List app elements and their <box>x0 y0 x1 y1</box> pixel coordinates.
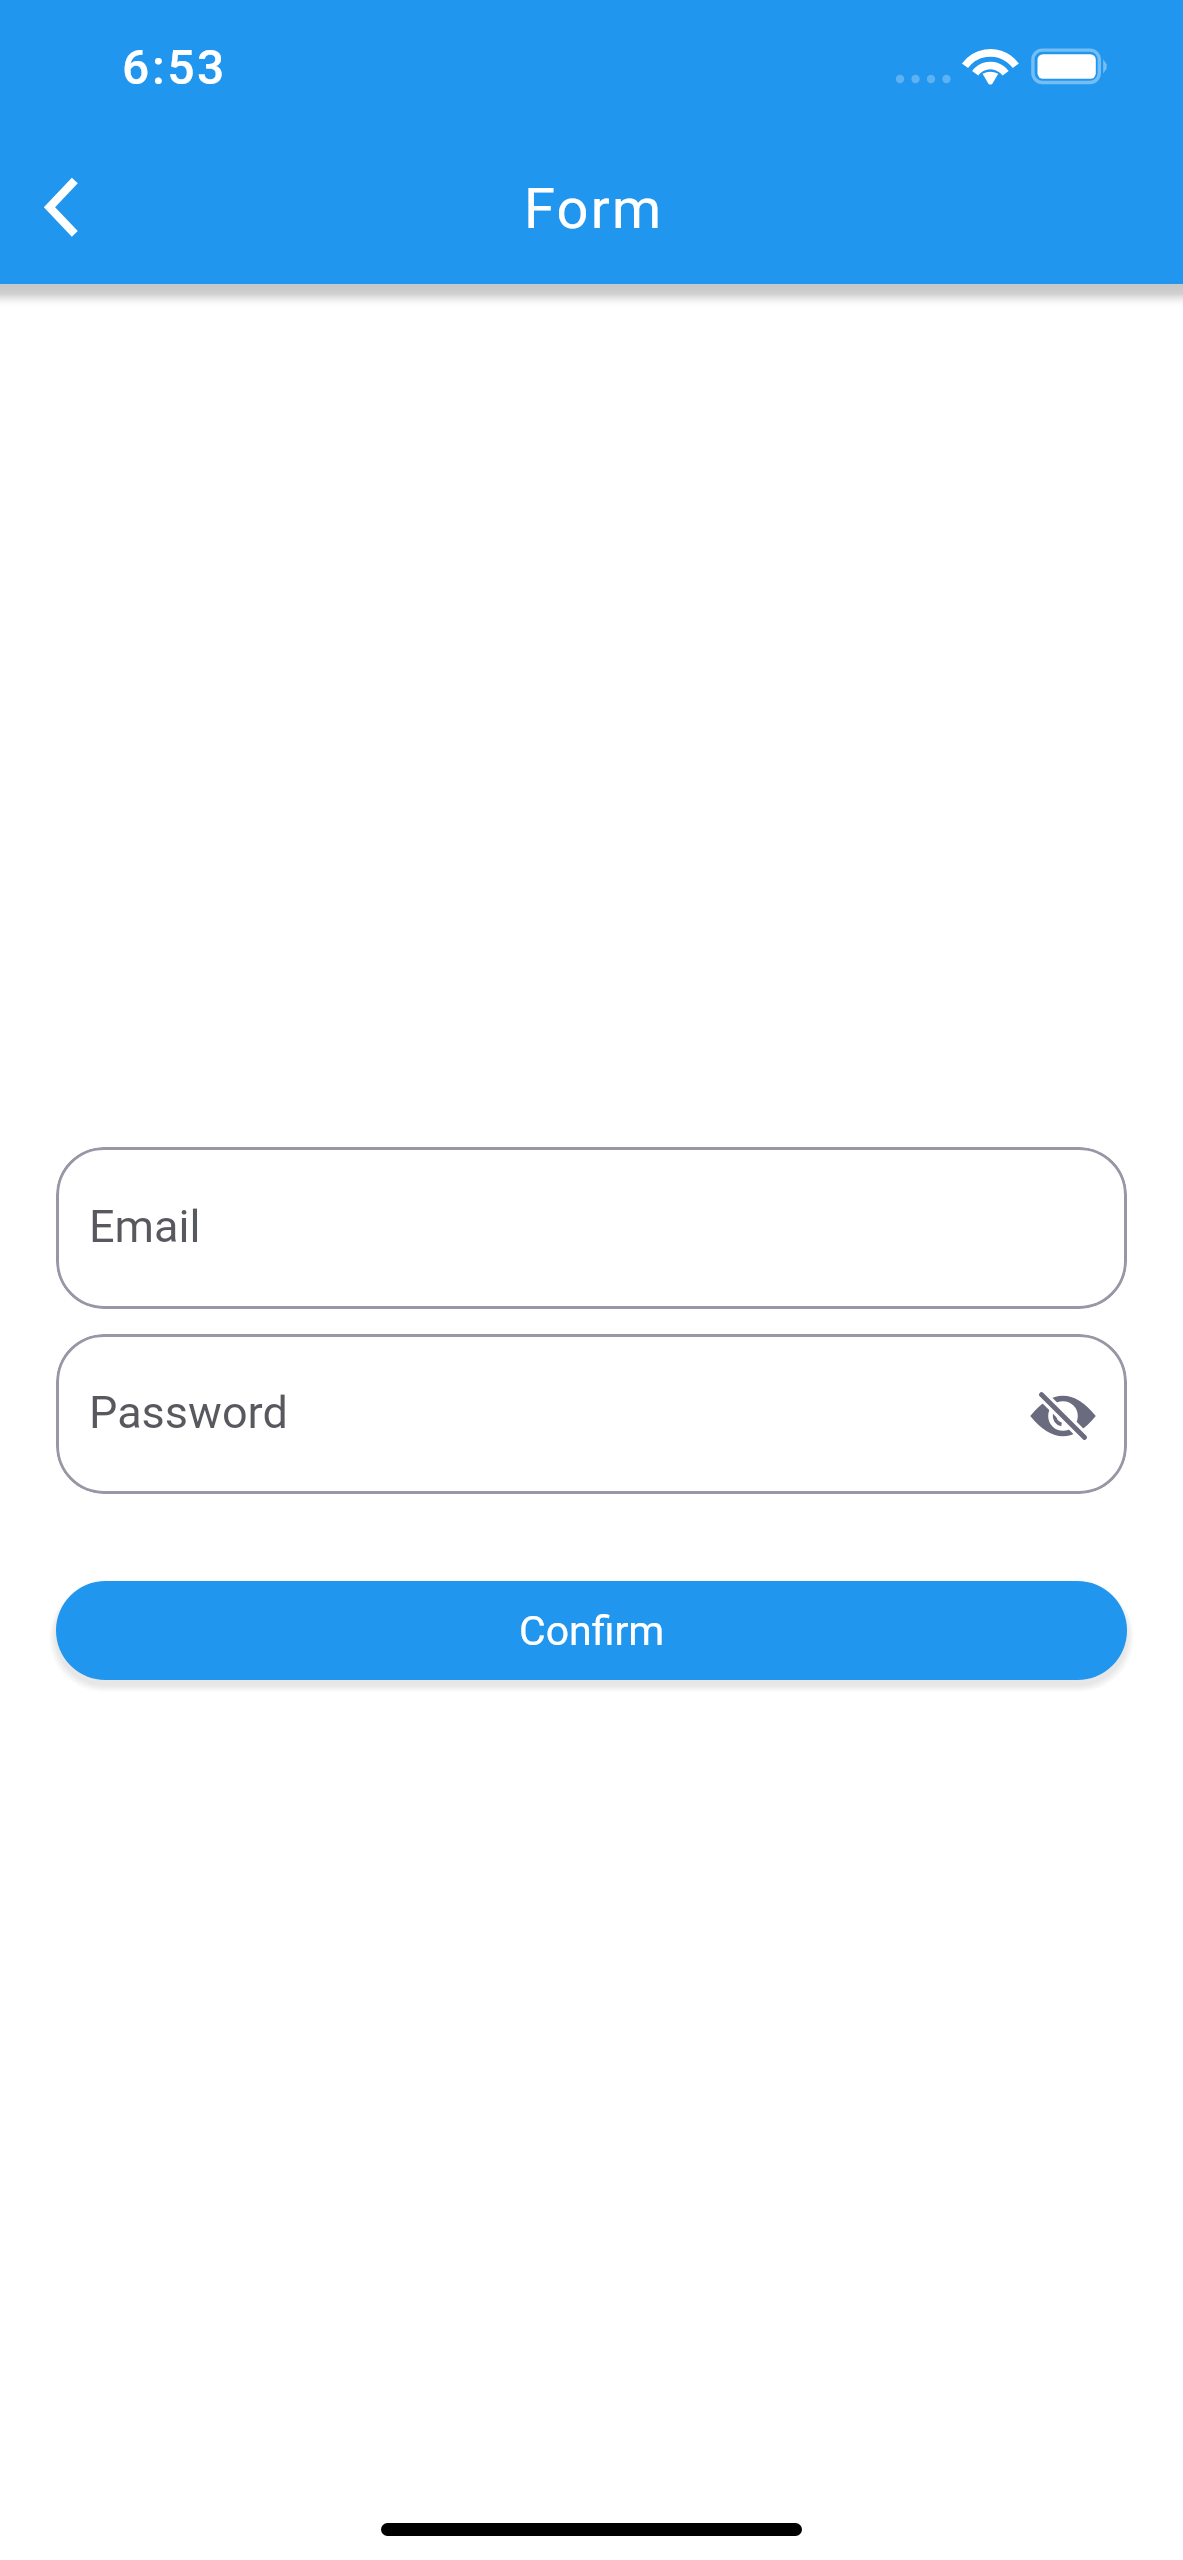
staticText: 6:53 <box>122 39 227 95</box>
staticText: Password <box>89 1386 288 1439</box>
button[interactable]: Confirm <box>56 1581 1127 1680</box>
button[interactable]: Email <box>56 1147 1127 1309</box>
staticText: Email <box>89 1200 201 1253</box>
staticText: Confirm <box>519 1607 665 1655</box>
button[interactable]: Toggle password visibility <box>1019 1372 1107 1460</box>
button[interactable]: Back <box>0 152 118 262</box>
staticText: Form <box>524 176 664 242</box>
button[interactable]: Password <box>56 1334 1127 1494</box>
